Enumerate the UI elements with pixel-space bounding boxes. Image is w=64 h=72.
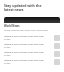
staticText: Stay updated with the latest news — [4, 3, 42, 12]
staticText: Headline story number goes here now — [4, 35, 44, 38]
button[interactable]: Headline story number goes here now — [4, 50, 60, 58]
button[interactable]: World News — [4, 17, 60, 32]
staticText: 2h ago — [4, 38, 11, 41]
button[interactable]: Headline story number goes here now — [4, 58, 60, 66]
staticText: Headline story number goes here now — [4, 59, 44, 62]
staticText: Global markets rally after policy shift … — [4, 29, 48, 32]
button[interactable]: Headline story number goes here now — [4, 42, 60, 50]
staticText: Headline story number goes here now — [4, 43, 44, 46]
staticText: Headline story number goes here now — [4, 51, 44, 54]
staticText: 2h ago — [4, 54, 11, 57]
staticText: 2h ago — [4, 46, 11, 49]
button[interactable]: Headline story number goes here now — [4, 34, 60, 42]
staticText: 2h ago — [4, 62, 11, 65]
staticText: World News — [4, 24, 20, 28]
